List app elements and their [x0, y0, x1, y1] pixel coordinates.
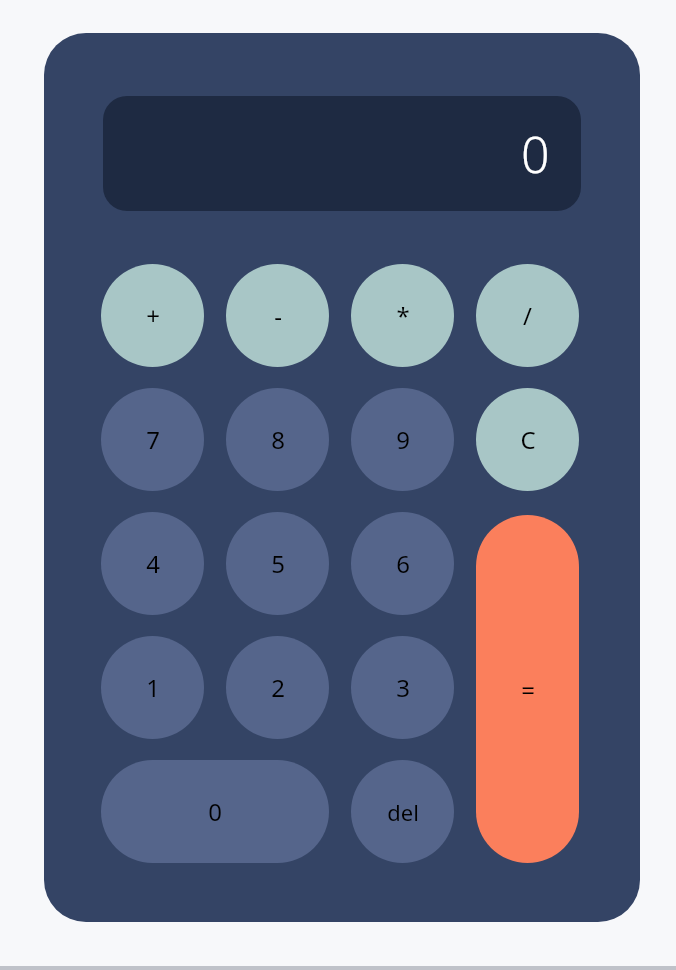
- staticText: 2: [271, 671, 285, 704]
- button[interactable]: Equals: [476, 515, 579, 863]
- button[interactable]: -: [226, 264, 329, 367]
- staticText: *: [396, 299, 410, 332]
- staticText: 7: [146, 423, 160, 456]
- staticText: 9: [396, 423, 410, 456]
- button[interactable]: 8: [226, 388, 329, 491]
- button[interactable]: del: [351, 760, 454, 863]
- staticText: 5: [271, 547, 285, 580]
- button[interactable]: *: [351, 264, 454, 367]
- button[interactable]: 1: [101, 636, 204, 739]
- staticText: +: [146, 299, 160, 332]
- staticText: 0: [208, 795, 222, 828]
- staticText: =: [521, 673, 535, 706]
- staticText: 8: [271, 423, 285, 456]
- button[interactable]: 7: [101, 388, 204, 491]
- staticText: /: [523, 299, 532, 332]
- staticText: 4: [146, 547, 160, 580]
- button[interactable]: 5: [226, 512, 329, 615]
- button[interactable]: 6: [351, 512, 454, 615]
- button[interactable]: +: [101, 264, 204, 367]
- staticText: 3: [396, 671, 410, 704]
- staticText: 1: [146, 671, 160, 704]
- button[interactable]: 9: [351, 388, 454, 491]
- staticText: C: [520, 423, 536, 456]
- staticText: -: [274, 299, 282, 332]
- button[interactable]: 4: [101, 512, 204, 615]
- button[interactable]: 2: [226, 636, 329, 739]
- staticText: del: [387, 797, 419, 827]
- button[interactable]: /: [476, 264, 579, 367]
- button[interactable]: 3: [351, 636, 454, 739]
- button[interactable]: 0: [101, 760, 329, 863]
- button[interactable]: C: [476, 388, 579, 491]
- staticText: 0: [521, 120, 550, 188]
- staticText: 6: [396, 547, 410, 580]
